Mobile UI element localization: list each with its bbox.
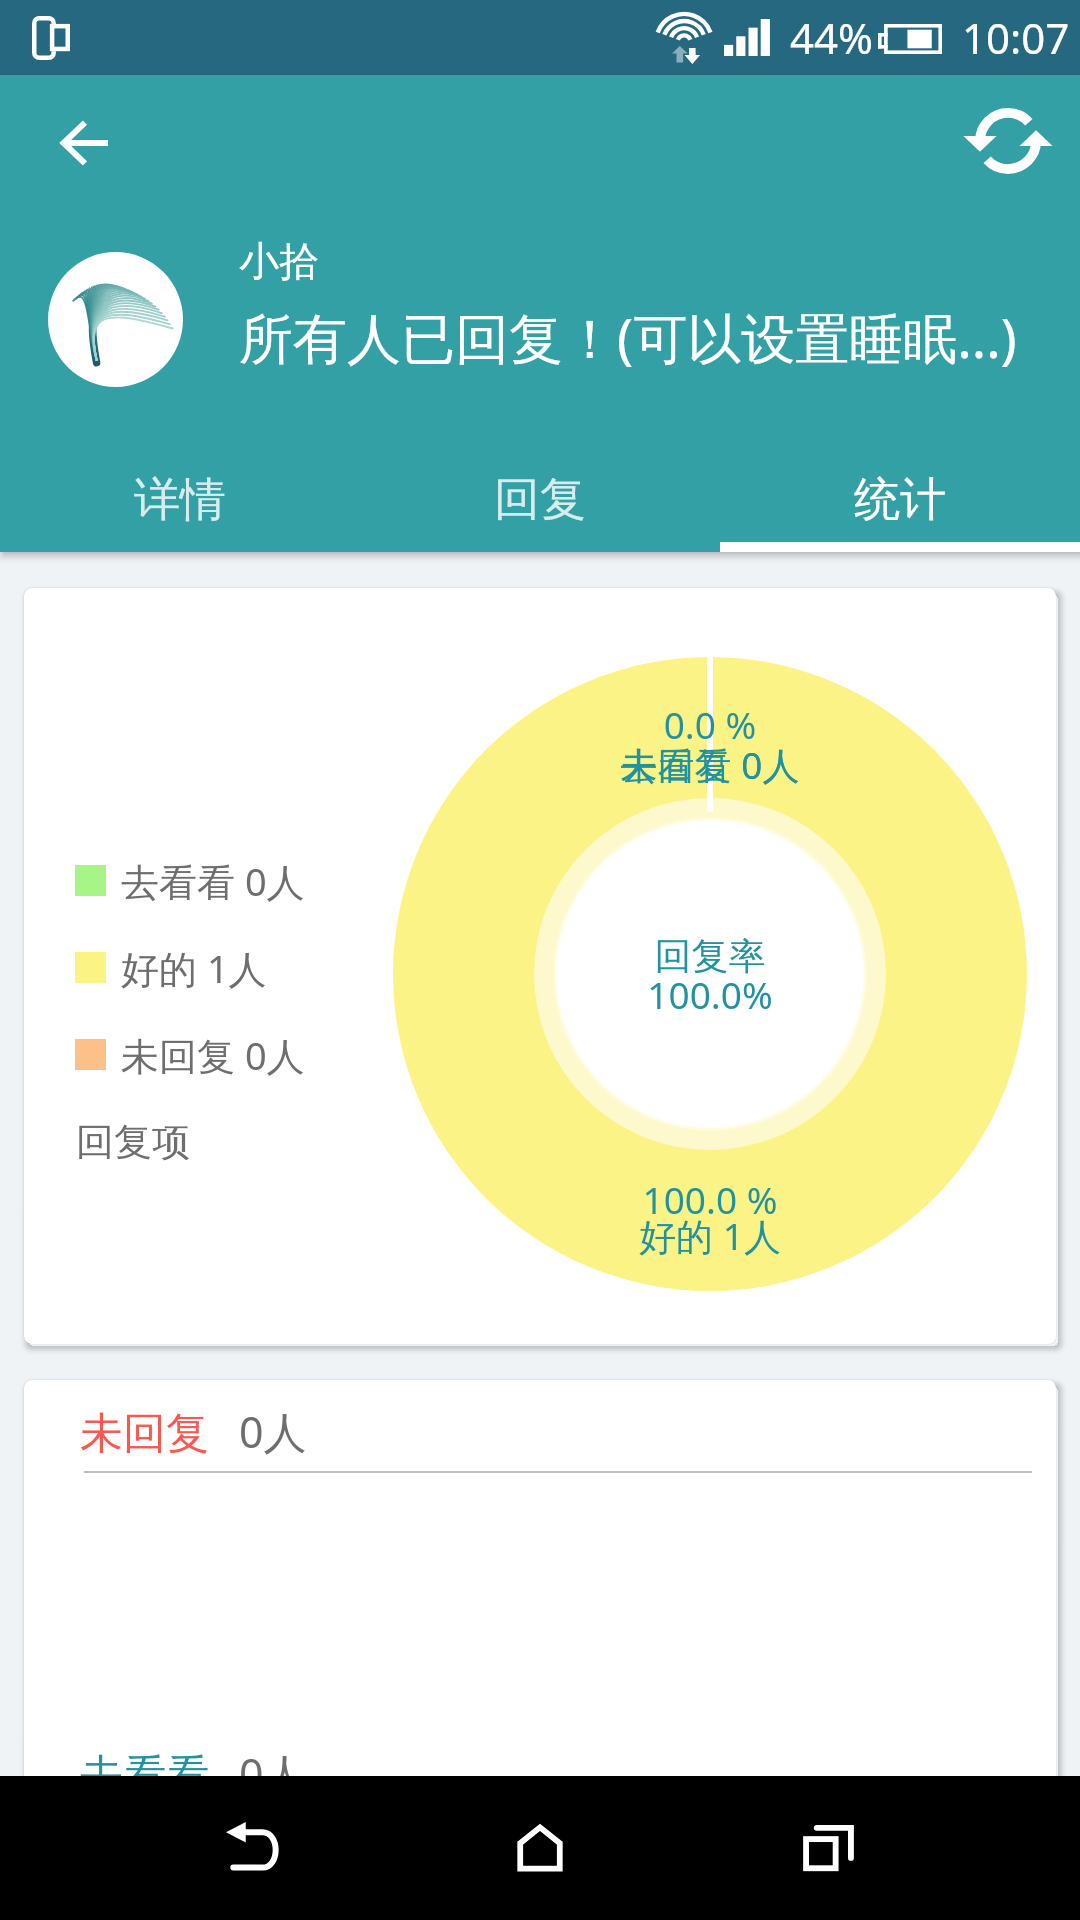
button[interactable]: Refresh [944,77,1072,205]
staticText: 所有人已回复！(可以设置睡眠...) [239,300,1017,374]
button[interactable]: 详情 [0,442,360,552]
staticText: 10:07 [962,9,1070,66]
staticText: 未回复 0人 [121,1029,305,1081]
staticText: 0人 [239,1744,307,1803]
staticText: 好的 1人 [121,942,267,994]
staticText: 去看看 0人 [121,855,305,907]
staticText: 去看看 0人 [410,739,1010,790]
staticText: 回复项 [76,1118,190,1166]
staticText: 未回复 [80,1407,209,1461]
staticText: 详情 [134,471,226,529]
button[interactable]: Back [20,79,148,207]
button[interactable]: 去看看 [80,1744,1056,1803]
staticText: 统计 [854,471,946,529]
button[interactable]: Home [477,1776,603,1920]
button[interactable]: Recents [765,1776,891,1920]
button[interactable]: Back [189,1776,315,1920]
staticText: 44% [790,9,873,66]
staticText: 回复率 [410,933,1010,980]
staticText: 0人 [239,1402,307,1461]
staticText: 0.0 % [410,699,1010,749]
button[interactable]: 未回复 [80,1402,1056,1461]
staticText: 100.0% [410,969,1010,1019]
button[interactable]: 统计 [720,442,1080,552]
button[interactable]: 回复 [360,442,720,552]
staticText: 去看看 [80,1749,209,1803]
staticText: 小拾 [239,236,319,286]
staticText: 100.0 % [410,1174,1010,1224]
staticText: 好的 1人 [410,1210,1010,1261]
staticText: 未回复 0人 [410,739,1010,790]
staticText: 回复 [494,471,586,529]
